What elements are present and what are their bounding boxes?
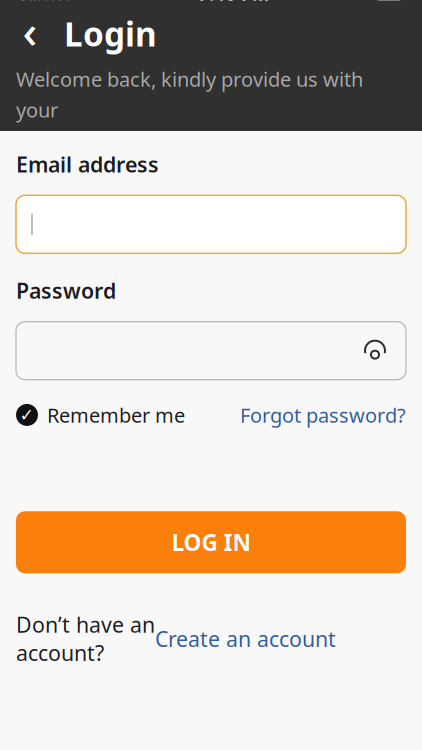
staticText: Create an account [155, 624, 336, 653]
staticText: Remember me [47, 402, 185, 428]
staticText: Login [64, 11, 157, 56]
staticText: 7:46 PM [198, 0, 269, 6]
staticText: ‹ [22, 1, 37, 61]
staticText: ✓ [19, 405, 34, 425]
staticText: Carrier [16, 0, 72, 5]
staticText: Email address [16, 150, 159, 178]
button[interactable]: ✓ [16, 402, 185, 428]
staticText: LOG IN [171, 527, 250, 557]
staticText: Forgot password? [240, 402, 406, 428]
staticText: Password [16, 276, 116, 305]
button[interactable]: Create an account [155, 624, 336, 653]
staticText: Welcome back, kindly provide us with you… [16, 66, 363, 153]
staticText: Don’t have an account? [16, 610, 155, 667]
button[interactable]: Show password [358, 336, 392, 366]
button[interactable]: Forgot password? [240, 402, 406, 428]
button[interactable]: Back [10, 14, 50, 54]
button[interactable]: LOG IN [16, 511, 406, 573]
